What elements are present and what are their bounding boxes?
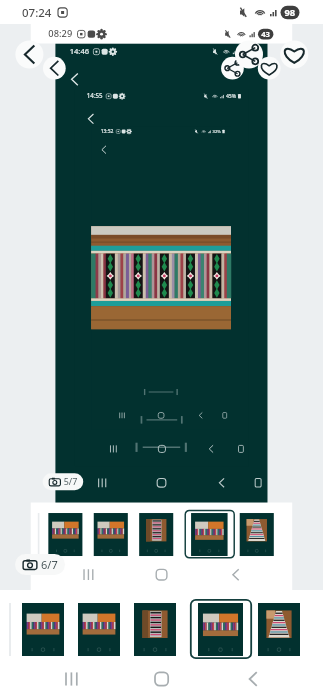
button[interactable]: Share (235, 40, 264, 69)
button[interactable]: Home (144, 662, 180, 698)
button[interactable]: Recents (75, 662, 111, 698)
button[interactable]: Favourite (280, 40, 309, 69)
button[interactable]: Back (216, 662, 252, 698)
button[interactable]: Back (15, 40, 44, 69)
button[interactable]: Photo 6 of 7 (15, 554, 65, 575)
